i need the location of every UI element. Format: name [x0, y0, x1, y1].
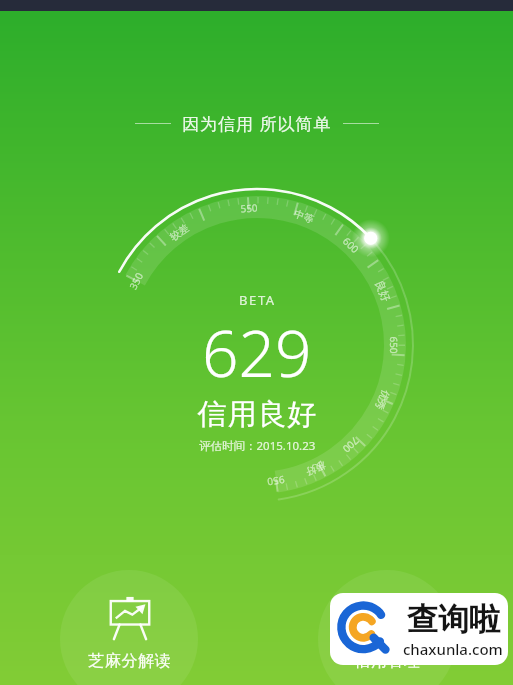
- staticText: chaxunla.com: [403, 639, 503, 659]
- button[interactable]: 信用管理: [318, 570, 456, 685]
- staticText: 600: [340, 234, 362, 256]
- staticText: 中等: [292, 207, 315, 226]
- staticText: 查询啦: [407, 600, 500, 639]
- staticText: 信用良好: [197, 396, 317, 433]
- staticText: 优秀: [373, 388, 392, 411]
- staticText: 良好: [372, 278, 394, 304]
- staticText: 极好: [304, 458, 328, 479]
- staticText: 信用管理: [354, 651, 421, 671]
- staticText: 芝麻分解读: [88, 651, 171, 671]
- staticText: 因为信用 所以简单: [182, 112, 332, 135]
- staticText: 700: [340, 434, 362, 456]
- button[interactable]: 芝麻分解读: [60, 570, 198, 685]
- staticText: 629: [202, 309, 312, 396]
- staticText: BETA: [239, 291, 276, 309]
- staticText: 650: [387, 336, 401, 354]
- staticText: 评估时间：2015.10.23: [199, 438, 316, 454]
- staticText: 350: [126, 270, 146, 292]
- staticText: 较差: [167, 221, 191, 243]
- staticText: 950: [266, 473, 286, 489]
- staticText: 550: [240, 200, 258, 216]
